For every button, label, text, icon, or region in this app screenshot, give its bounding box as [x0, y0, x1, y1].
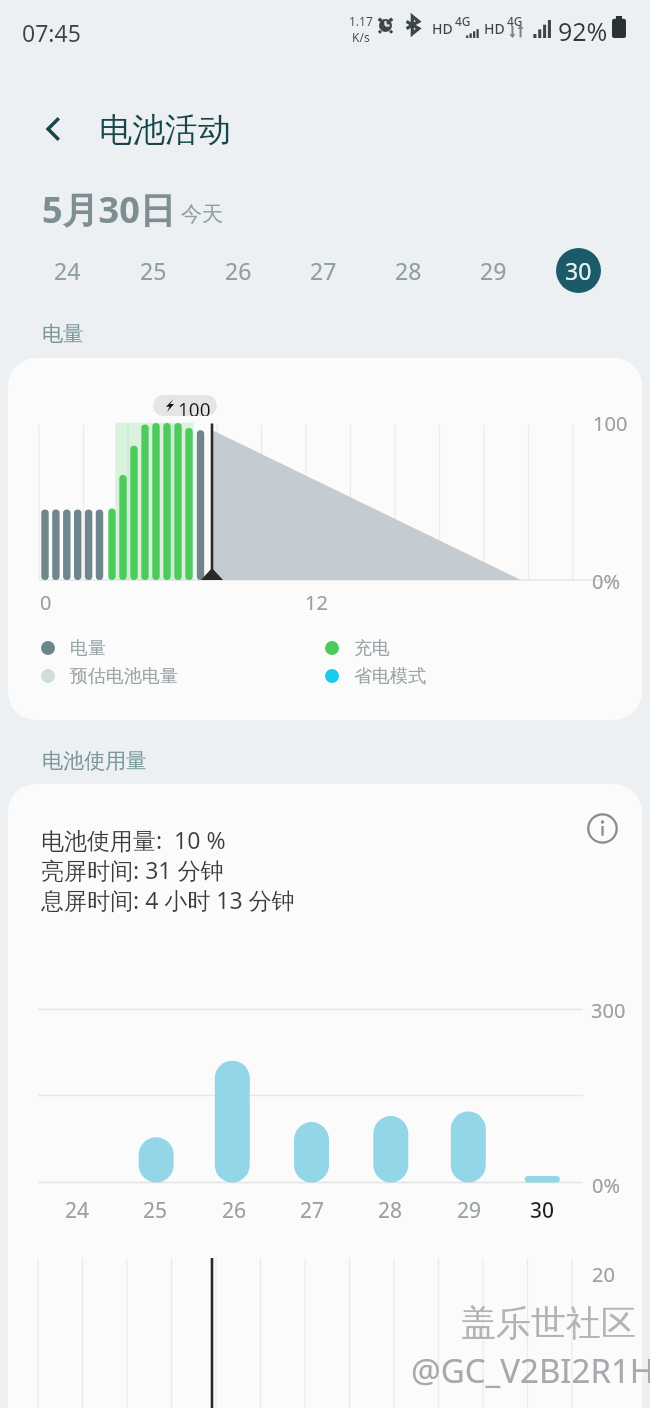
- staticText: 电量: [70, 637, 106, 660]
- staticText: 12: [305, 589, 328, 616]
- staticText: 4G: [507, 13, 523, 29]
- staticText: 5月30日: [42, 185, 176, 234]
- staticText: 亮屏时间: 31 分钟: [41, 854, 224, 885]
- staticText: 92%: [558, 14, 608, 48]
- staticText: 省电模式: [354, 665, 426, 688]
- staticText: 29: [457, 1196, 482, 1224]
- button[interactable]: 25: [110, 242, 196, 298]
- staticText: 电池使用量: 10 %: [41, 824, 226, 855]
- staticText: 1.17: [349, 13, 373, 29]
- staticText: 电量: [42, 321, 84, 347]
- staticText: 27: [300, 1196, 325, 1224]
- button[interactable]: 28: [366, 242, 451, 298]
- button[interactable]: 预估电池电量: [41, 663, 178, 689]
- staticText: 25: [143, 1196, 168, 1224]
- button[interactable]: 29: [451, 242, 536, 298]
- staticText: 300: [591, 997, 626, 1024]
- staticText: 今天: [181, 201, 223, 227]
- staticText: 28: [395, 255, 422, 286]
- staticText: 预估电池电量: [70, 665, 178, 688]
- button[interactable]: Battery level 100: [153, 395, 217, 416]
- staticText: 息屏时间: 4 小时 13 分钟: [41, 884, 295, 915]
- staticText: 24: [65, 1196, 90, 1224]
- staticText: 100: [593, 410, 628, 437]
- button[interactable]: 27: [281, 242, 366, 298]
- staticText: 24: [54, 255, 81, 286]
- button[interactable]: 充电: [325, 635, 390, 661]
- staticText: 盖乐世社区: [461, 1301, 636, 1345]
- staticText: 26: [225, 255, 252, 286]
- staticText: 30: [530, 1196, 555, 1224]
- staticText: 27: [310, 255, 337, 286]
- staticText: 电池使用量: [42, 748, 147, 774]
- button[interactable]: 26: [196, 242, 281, 298]
- staticText: 20: [592, 1261, 615, 1288]
- staticText: 25: [140, 255, 167, 286]
- staticText: HD: [432, 19, 453, 38]
- button[interactable]: 电量: [41, 635, 106, 661]
- staticText: 07:45: [22, 17, 81, 48]
- button[interactable]: 30: [536, 242, 621, 298]
- staticText: 电池活动: [99, 109, 231, 151]
- button[interactable]: 省电模式: [325, 663, 426, 689]
- staticText: @GC_V2BI2R1H: [411, 1348, 650, 1393]
- staticText: 充电: [354, 637, 390, 660]
- staticText: 0%: [592, 568, 621, 595]
- button[interactable]: Back: [22, 98, 86, 160]
- staticText: 26: [222, 1196, 247, 1224]
- button[interactable]: 24: [24, 242, 110, 298]
- staticText: 100: [178, 397, 211, 416]
- staticText: 0: [40, 589, 52, 616]
- staticText: 30: [565, 255, 592, 286]
- staticText: 28: [378, 1196, 403, 1224]
- staticText: K/s: [352, 29, 370, 45]
- staticText: 4G: [455, 13, 471, 29]
- staticText: 0%: [592, 1172, 621, 1199]
- button[interactable]: Info: [579, 805, 625, 851]
- staticText: HD: [484, 19, 505, 38]
- staticText: 29: [480, 255, 507, 286]
